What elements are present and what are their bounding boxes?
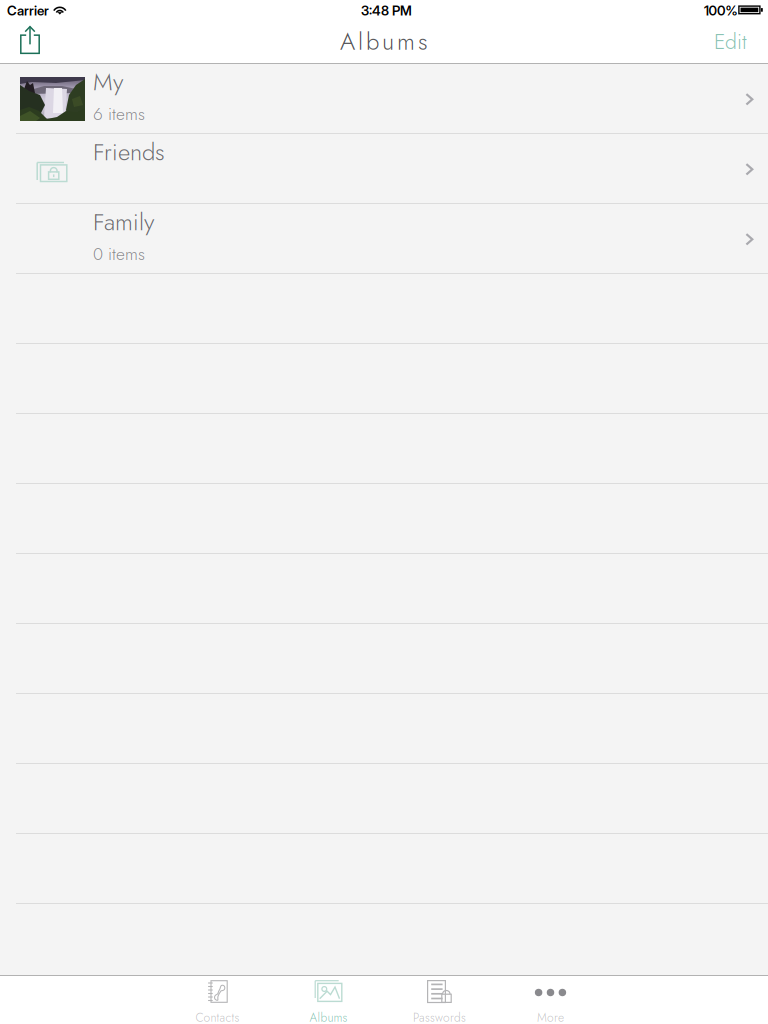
staticText: Friends [93,135,165,169]
staticText: 100% [704,2,737,19]
staticText: Contacts [195,1009,239,1024]
staticText: Albums [340,24,428,59]
staticText: Edit [714,26,747,57]
staticText: My [93,65,123,99]
button[interactable]: More [495,976,606,1024]
staticText: More [537,1009,564,1024]
staticText: Carrier [7,2,49,19]
button[interactable]: Passwords [384,976,495,1024]
button[interactable]: Contacts [162,976,273,1024]
staticText: Passwords [413,1009,466,1024]
button[interactable]: Albums [273,976,384,1024]
staticText: Albums [309,1009,347,1024]
button[interactable]: My [0,64,768,134]
button[interactable]: Friends [0,134,768,204]
button[interactable]: Family [0,204,768,274]
button[interactable]: Edit [700,16,768,67]
staticText: 6 items [93,101,145,126]
staticText: 0 items [93,241,145,266]
staticText: 3:48 PM [361,2,412,19]
staticText: Family [93,205,154,239]
button[interactable]: Share [0,20,52,63]
